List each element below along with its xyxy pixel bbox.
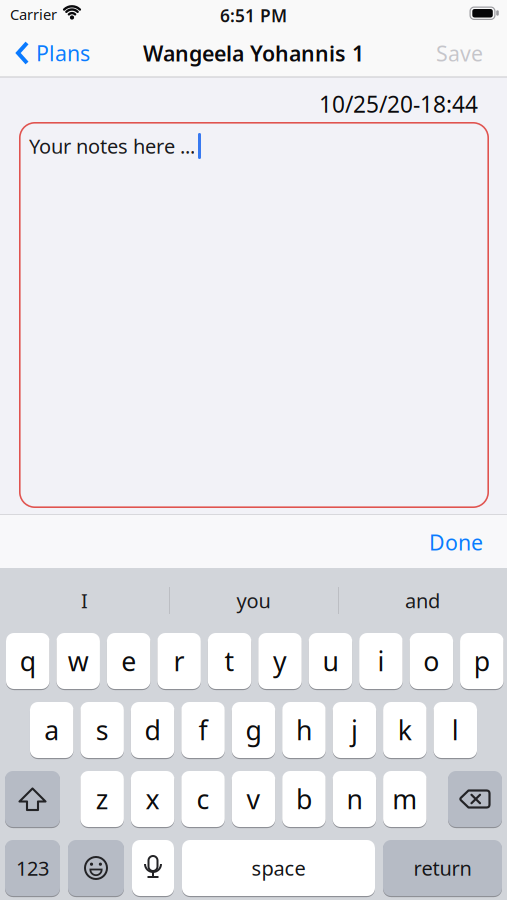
- staticText: 6:51 PM: [220, 4, 287, 27]
- staticText: I: [81, 587, 88, 614]
- button[interactable]: you: [169, 568, 338, 633]
- staticText: return: [413, 855, 471, 881]
- button[interactable]: d: [131, 702, 174, 758]
- button[interactable]: Emoji: [68, 840, 124, 896]
- staticText: q: [20, 643, 36, 679]
- staticText: w: [68, 643, 89, 679]
- button[interactable]: space: [182, 840, 375, 896]
- button[interactable]: s: [80, 702, 124, 758]
- button[interactable]: Plans: [16, 37, 90, 69]
- staticText: p: [474, 643, 490, 679]
- staticText: u: [322, 643, 338, 679]
- staticText: n: [346, 781, 362, 817]
- button[interactable]: return: [383, 840, 502, 896]
- button[interactable]: Shift: [5, 771, 60, 827]
- staticText: j: [351, 712, 358, 748]
- staticText: g: [245, 712, 261, 748]
- staticText: Carrier: [10, 4, 57, 24]
- staticText: Done: [429, 528, 483, 556]
- button[interactable]: and: [338, 568, 507, 633]
- staticText: b: [296, 781, 312, 817]
- staticText: s: [96, 712, 109, 748]
- staticText: z: [96, 781, 109, 817]
- staticText: and: [405, 587, 440, 614]
- button[interactable]: w: [56, 633, 100, 689]
- button[interactable]: Dictate: [132, 840, 174, 896]
- button[interactable]: a: [30, 702, 73, 758]
- staticText: x: [146, 781, 160, 817]
- staticText: Your notes here ...: [29, 133, 195, 159]
- staticText: d: [145, 712, 161, 748]
- button[interactable]: h: [282, 702, 326, 758]
- staticText: v: [246, 781, 260, 817]
- button[interactable]: g: [232, 702, 275, 758]
- button[interactable]: Save: [436, 39, 483, 67]
- button[interactable]: x: [131, 771, 174, 827]
- button[interactable]: f: [181, 702, 225, 758]
- staticText: l: [452, 712, 459, 748]
- staticText: i: [377, 643, 384, 679]
- staticText: Wangeela Yohannis 1: [143, 39, 364, 67]
- button[interactable]: r: [157, 633, 201, 689]
- button[interactable]: i: [359, 633, 403, 689]
- staticText: o: [423, 643, 439, 679]
- button[interactable]: m: [383, 771, 427, 827]
- button[interactable]: c: [181, 771, 225, 827]
- button[interactable]: t: [208, 633, 251, 689]
- button[interactable]: Done: [429, 528, 483, 556]
- button[interactable]: v: [232, 771, 275, 827]
- button[interactable]: p: [460, 633, 504, 689]
- button[interactable]: y: [258, 633, 302, 689]
- button[interactable]: o: [410, 633, 453, 689]
- staticText: e: [121, 643, 136, 679]
- staticText: a: [44, 712, 59, 748]
- button[interactable]: Numbers: [5, 840, 60, 896]
- button[interactable]: j: [333, 702, 376, 758]
- button[interactable]: e: [107, 633, 150, 689]
- button[interactable]: Delete: [448, 771, 502, 827]
- staticText: k: [398, 712, 412, 748]
- staticText: m: [392, 781, 417, 817]
- button[interactable]: n: [333, 771, 376, 827]
- staticText: 10/25/20-18:44: [319, 89, 478, 119]
- button[interactable]: l: [434, 702, 477, 758]
- staticText: c: [197, 781, 210, 817]
- staticText: you: [236, 587, 270, 614]
- staticText: 123: [16, 855, 49, 881]
- staticText: space: [251, 855, 305, 881]
- staticText: Plans: [36, 39, 90, 67]
- button[interactable]: k: [383, 702, 427, 758]
- button[interactable]: I: [0, 568, 169, 633]
- staticText: y: [273, 643, 287, 679]
- button[interactable]: q: [6, 633, 49, 689]
- staticText: Save: [436, 39, 483, 67]
- button[interactable]: b: [282, 771, 326, 827]
- staticText: r: [174, 643, 185, 679]
- staticText: f: [199, 712, 208, 748]
- staticText: t: [225, 643, 235, 679]
- button[interactable]: u: [309, 633, 352, 689]
- button[interactable]: z: [80, 771, 124, 827]
- staticText: h: [296, 712, 312, 748]
